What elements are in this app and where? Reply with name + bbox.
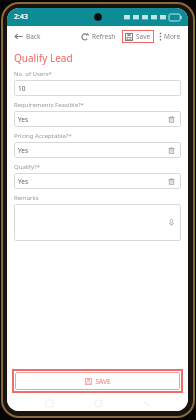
- button[interactable]: More: [157, 30, 183, 43]
- button[interactable]: Voice input: [166, 217, 177, 228]
- staticText: Requirements Feasible?*: [14, 101, 84, 109]
- staticText: 10: [18, 84, 26, 93]
- button[interactable]: Refresh: [79, 30, 118, 43]
- button[interactable]: Clear: [166, 176, 177, 187]
- button[interactable]: Back: [12, 30, 43, 43]
- staticText: Yes: [18, 177, 29, 186]
- button[interactable]: Save: [122, 30, 154, 43]
- button[interactable]: Clear: [166, 114, 177, 125]
- staticText: Pricing Acceptable?*: [14, 132, 72, 140]
- button[interactable]: 10: [14, 80, 181, 96]
- button[interactable]: Recents: [42, 396, 56, 410]
- button[interactable]: SAVE: [15, 372, 180, 390]
- button[interactable]: Yes: [14, 142, 181, 158]
- button[interactable]: Yes: [14, 173, 181, 189]
- staticText: Yes: [18, 146, 29, 155]
- staticText: Qualify Lead: [14, 51, 73, 65]
- staticText: More: [164, 32, 181, 41]
- staticText: Save: [136, 32, 151, 41]
- staticText: Remarks: [14, 194, 39, 202]
- button[interactable]: Home: [91, 396, 105, 410]
- staticText: No. of Users*: [14, 70, 52, 78]
- staticText: 2:43: [14, 12, 28, 22]
- staticText: Refresh: [92, 32, 116, 41]
- button[interactable]: Voice input: [14, 204, 181, 241]
- staticText: Back: [26, 32, 41, 41]
- button[interactable]: Clear: [166, 145, 177, 156]
- staticText: Qualify?*: [14, 163, 41, 171]
- button[interactable]: Yes: [14, 111, 181, 127]
- staticText: Yes: [18, 115, 29, 124]
- staticText: SAVE: [95, 377, 111, 386]
